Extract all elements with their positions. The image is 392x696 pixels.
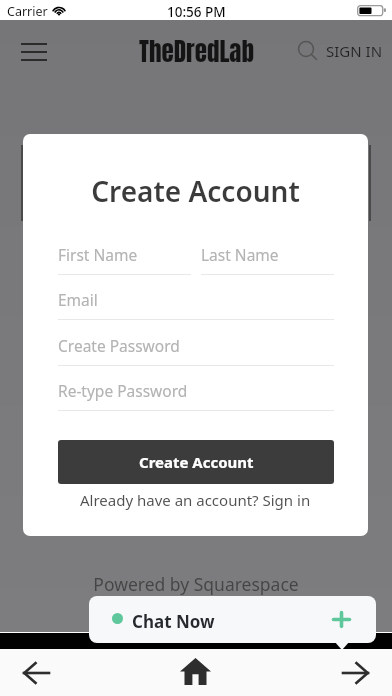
staticText: Already have an account? Sign in (80, 490, 311, 510)
staticText: 10:56 PM (167, 3, 226, 21)
staticText: Create Account (23, 172, 368, 210)
staticText: Last Name (201, 244, 279, 265)
staticText: TheDredLab (139, 33, 254, 71)
staticText: Create Password (58, 335, 180, 356)
button[interactable]: Create Account (58, 440, 334, 484)
staticText: Create Account (139, 452, 254, 472)
button[interactable]: SIGN IN (323, 38, 385, 64)
staticText: SIGN IN (326, 41, 383, 61)
button[interactable]: Already have an account? Sign in (23, 487, 368, 513)
staticText: First Name (58, 244, 138, 265)
button[interactable]: Search (294, 37, 322, 65)
button[interactable]: Home (161, 649, 230, 695)
button[interactable]: Forward (322, 650, 390, 695)
staticText: Carrier (7, 3, 48, 20)
staticText: Re-type Password (58, 380, 188, 401)
button[interactable]: Back (2, 650, 70, 695)
staticText: Chat Now (132, 610, 215, 633)
button[interactable]: Chat Now (89, 596, 376, 643)
staticText: Powered by Squarespace (0, 572, 392, 596)
button[interactable]: Menu (12, 33, 56, 69)
staticText: Email (58, 289, 98, 310)
